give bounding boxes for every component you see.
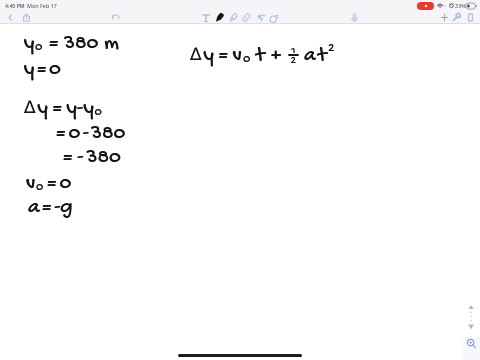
button[interactable]: Pen tool: [213, 11, 226, 24]
button[interactable]: Tools: [450, 11, 463, 24]
button[interactable]: Add: [438, 11, 451, 24]
button[interactable]: Back: [4, 11, 17, 24]
button[interactable]: Pages: [464, 11, 477, 24]
button[interactable]: Audio recording: [348, 11, 361, 24]
staticText: 4:40 PM: [5, 2, 25, 9]
button[interactable]: Zoom: [463, 337, 480, 360]
staticText: Mon Feb 17: [27, 2, 57, 9]
button[interactable]: Share: [20, 11, 33, 24]
button[interactable]: Highlighter: [227, 11, 240, 24]
button[interactable]: Eraser: [240, 11, 253, 24]
staticText: 33%: [455, 2, 466, 9]
button[interactable]: Lasso: [254, 11, 267, 24]
button[interactable]: Ink: [267, 11, 280, 24]
button[interactable]: Undo: [109, 11, 122, 24]
button[interactable]: Page navigation: [466, 305, 476, 331]
button[interactable]: Text tool: [199, 11, 212, 24]
